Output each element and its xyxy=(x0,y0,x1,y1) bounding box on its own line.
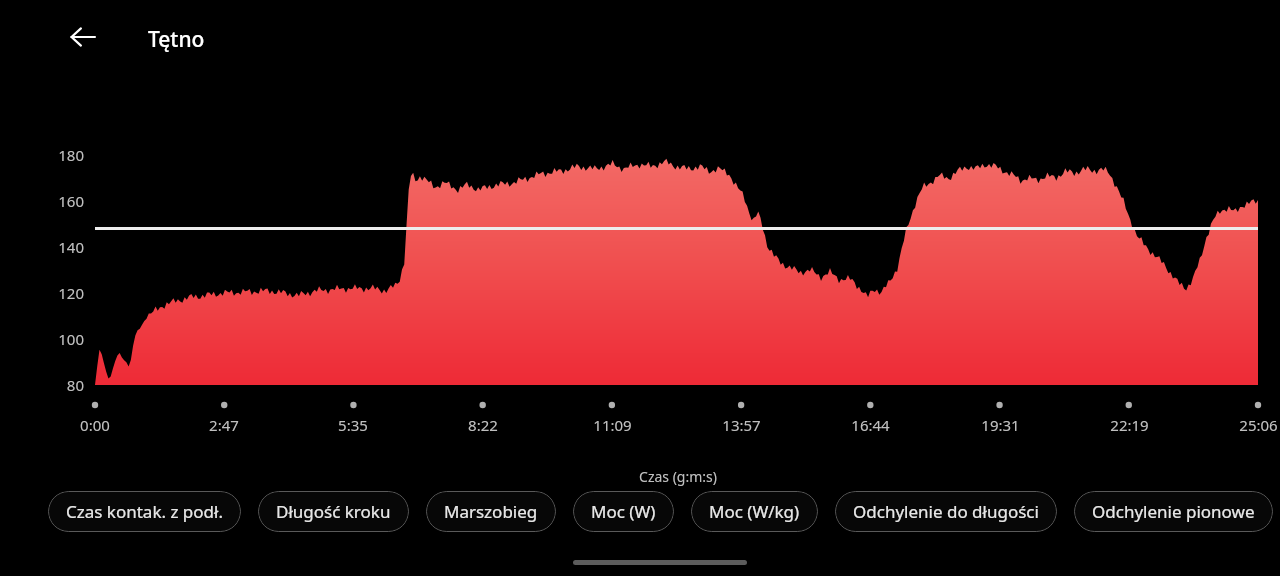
staticText: 22:19 xyxy=(1110,415,1149,435)
staticText: Odchylenie pionowe xyxy=(1092,500,1255,523)
staticText: 0:00 xyxy=(80,415,110,435)
staticText: 19:31 xyxy=(981,415,1020,435)
button[interactable]: Długość kroku xyxy=(258,491,409,532)
button[interactable]: Moc (W) xyxy=(573,491,674,532)
staticText: Odchylenie do długości xyxy=(853,500,1039,523)
staticText: 80 xyxy=(66,375,84,395)
staticText: Czas (g:m:s) xyxy=(639,467,717,486)
staticText: Czas kontak. z podł. xyxy=(66,500,223,523)
staticText: 16:44 xyxy=(851,415,890,435)
button[interactable]: Back xyxy=(60,14,106,60)
staticText: 140 xyxy=(58,237,84,257)
staticText: 2:47 xyxy=(209,415,239,435)
staticText: 8:22 xyxy=(468,415,498,435)
staticText: Tętno xyxy=(148,25,205,54)
staticText: Marszobieg xyxy=(444,500,538,523)
staticText: 180 xyxy=(58,145,84,165)
button[interactable]: Marszobieg xyxy=(426,491,556,532)
staticText: 11:09 xyxy=(593,415,632,435)
staticText: 5:35 xyxy=(338,415,368,435)
staticText: 160 xyxy=(58,191,84,211)
staticText: Moc (W) xyxy=(591,500,656,523)
button[interactable]: Czas kontak. z podł. xyxy=(48,491,241,532)
staticText: 13:57 xyxy=(722,415,761,435)
button[interactable]: Moc (W/kg) xyxy=(691,491,818,532)
staticText: 25:06 xyxy=(1239,415,1278,435)
button[interactable]: Odchylenie do długości xyxy=(835,491,1057,532)
staticText: 120 xyxy=(58,283,84,303)
staticText: Długość kroku xyxy=(276,500,391,523)
button[interactable]: Odchylenie pionowe xyxy=(1074,491,1273,532)
staticText: 100 xyxy=(58,329,84,349)
staticText: Moc (W/kg) xyxy=(709,500,800,523)
